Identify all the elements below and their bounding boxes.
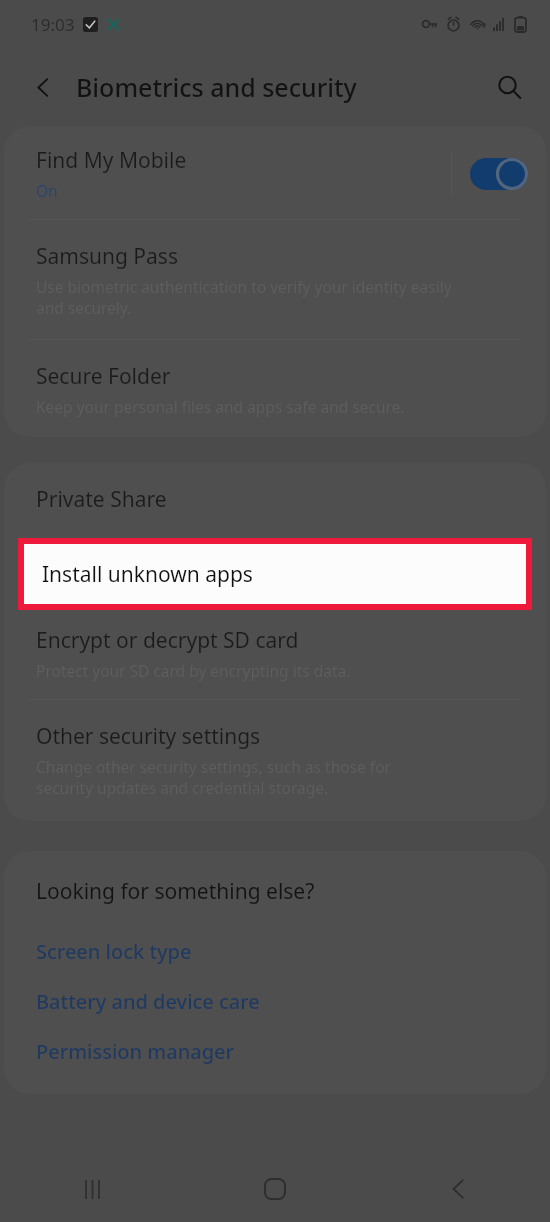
staticText: Private Share	[36, 485, 167, 514]
button[interactable]: Screen lock type	[4, 928, 546, 978]
button[interactable]: Other security settings	[4, 700, 546, 821]
button[interactable]: Search	[485, 63, 533, 111]
staticText: Change other security settings, such as …	[36, 756, 391, 799]
staticText: Battery and device care	[36, 988, 260, 1015]
staticText: Biometrics and security	[76, 70, 357, 104]
button[interactable]: Home	[244, 1158, 306, 1220]
staticText: Permission manager	[36, 1038, 234, 1065]
button[interactable]: Recents	[61, 1158, 123, 1220]
button[interactable]: Install unknown apps	[24, 544, 526, 604]
button[interactable]: Find My Mobile	[4, 126, 546, 219]
button[interactable]: Samsung Pass	[4, 220, 546, 339]
staticText: Other security settings	[36, 722, 261, 751]
button[interactable]: Find My Mobile toggle	[470, 158, 528, 190]
button[interactable]: Secure Folder	[4, 340, 546, 437]
button[interactable]: Back	[427, 1158, 489, 1220]
staticText: On	[36, 180, 58, 201]
staticText: Keep your personal files and apps safe a…	[36, 396, 405, 417]
staticText: Use biometric authentication to verify y…	[36, 276, 452, 319]
staticText: Encrypt or decrypt SD card	[36, 626, 299, 655]
staticText: Protect your SD card by encrypting its d…	[36, 660, 351, 681]
button[interactable]: Permission manager	[4, 1028, 546, 1078]
button[interactable]: Private Share	[4, 463, 546, 538]
staticText: Find My Mobile	[36, 146, 187, 175]
staticText: 19:03	[31, 13, 75, 36]
staticText: Samsung Pass	[36, 242, 178, 271]
button[interactable]: Encrypt or decrypt SD card	[4, 610, 546, 699]
staticText: Secure Folder	[36, 362, 171, 391]
staticText: Looking for something else?	[36, 877, 315, 906]
staticText: Install unknown apps	[42, 560, 253, 589]
staticText: Screen lock type	[36, 938, 192, 965]
button[interactable]: Battery and device care	[4, 978, 546, 1028]
button[interactable]: Back	[20, 64, 66, 110]
